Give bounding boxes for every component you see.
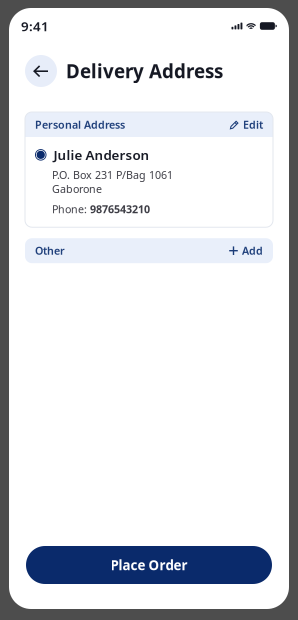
button[interactable]: Edit <box>229 117 263 132</box>
staticText: Phone: 9876543210 <box>52 202 150 216</box>
staticText: 9:41 <box>21 17 49 35</box>
staticText: Other <box>35 244 65 258</box>
staticText: Personal Address <box>35 117 125 132</box>
staticText: P.O. Box 231 P/Bag 1061 <box>52 168 173 182</box>
staticText: Add <box>242 244 263 258</box>
staticText: Julie Anderson <box>53 146 149 164</box>
staticText: Gaborone <box>52 182 102 196</box>
button[interactable]: Add <box>228 244 263 258</box>
button[interactable]: Julie Anderson <box>25 137 273 227</box>
button[interactable]: Back <box>25 55 57 87</box>
staticText: Edit <box>243 117 263 132</box>
staticText: Place Order <box>110 556 187 574</box>
staticText: Delivery Address <box>66 59 223 83</box>
button[interactable]: Place Order <box>26 546 272 584</box>
